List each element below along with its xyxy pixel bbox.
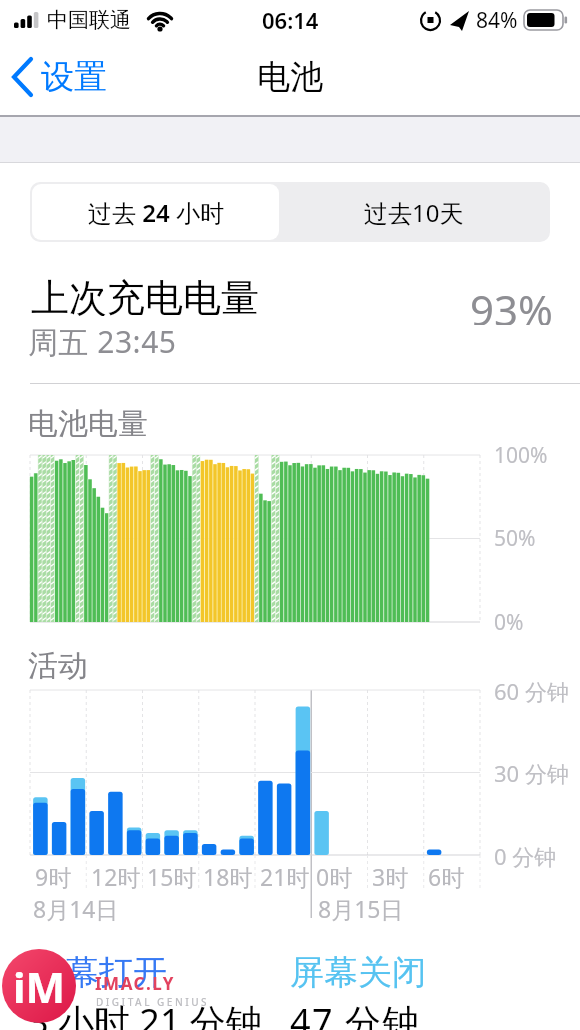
staticText: 47 分钟 bbox=[290, 997, 421, 1030]
staticText: 周五 23:45 bbox=[28, 321, 177, 362]
staticText: 设置 bbox=[41, 56, 107, 98]
staticText: 3时 bbox=[372, 861, 409, 891]
staticText: DIGITAL GENIUS bbox=[96, 995, 210, 1009]
button[interactable]: 设置 bbox=[8, 55, 158, 99]
staticText: 84% bbox=[476, 6, 518, 34]
staticText: 30 分钟 bbox=[494, 758, 569, 787]
staticText: 8月14日 bbox=[33, 893, 119, 923]
staticText: IMAC.LY bbox=[95, 972, 175, 995]
staticText: 0% bbox=[494, 608, 524, 637]
staticText: 0时 bbox=[316, 861, 353, 891]
staticText: 中国联通 bbox=[47, 7, 131, 33]
staticText: 21时 bbox=[260, 861, 310, 891]
button[interactable] bbox=[288, 948, 528, 1030]
button[interactable]: 过去10天 bbox=[279, 184, 548, 240]
staticText: iM bbox=[13, 958, 66, 1015]
staticText: 3 小时 21 分钟 bbox=[28, 997, 262, 1030]
staticText: 过去 24 小时 bbox=[88, 196, 224, 229]
staticText: 过去10天 bbox=[364, 196, 464, 229]
staticText: 6时 bbox=[428, 861, 465, 891]
staticText: 电池 bbox=[257, 56, 323, 98]
staticText: 8月15日 bbox=[318, 893, 404, 923]
button[interactable] bbox=[30, 948, 270, 1030]
staticText: 18时 bbox=[203, 861, 253, 891]
staticText: 60 分钟 bbox=[494, 676, 569, 705]
staticText: 屏幕关闭 bbox=[290, 951, 426, 994]
staticText: 活动 bbox=[28, 647, 88, 685]
button[interactable]: 过去 24 小时 bbox=[32, 184, 279, 240]
staticText: 0 分钟 bbox=[494, 841, 557, 870]
staticText: 100% bbox=[494, 441, 548, 470]
staticText: 50% bbox=[494, 524, 536, 553]
staticText: 15时 bbox=[147, 861, 197, 891]
staticText: 屏幕打开 bbox=[31, 951, 167, 994]
staticText: 9时 bbox=[35, 861, 72, 891]
staticText: 93% bbox=[470, 281, 553, 325]
staticText: 06:14 bbox=[262, 5, 319, 35]
staticText: 电池电量 bbox=[28, 405, 148, 443]
staticText: 上次充电电量 bbox=[31, 274, 259, 316]
staticText: 12时 bbox=[91, 861, 141, 891]
